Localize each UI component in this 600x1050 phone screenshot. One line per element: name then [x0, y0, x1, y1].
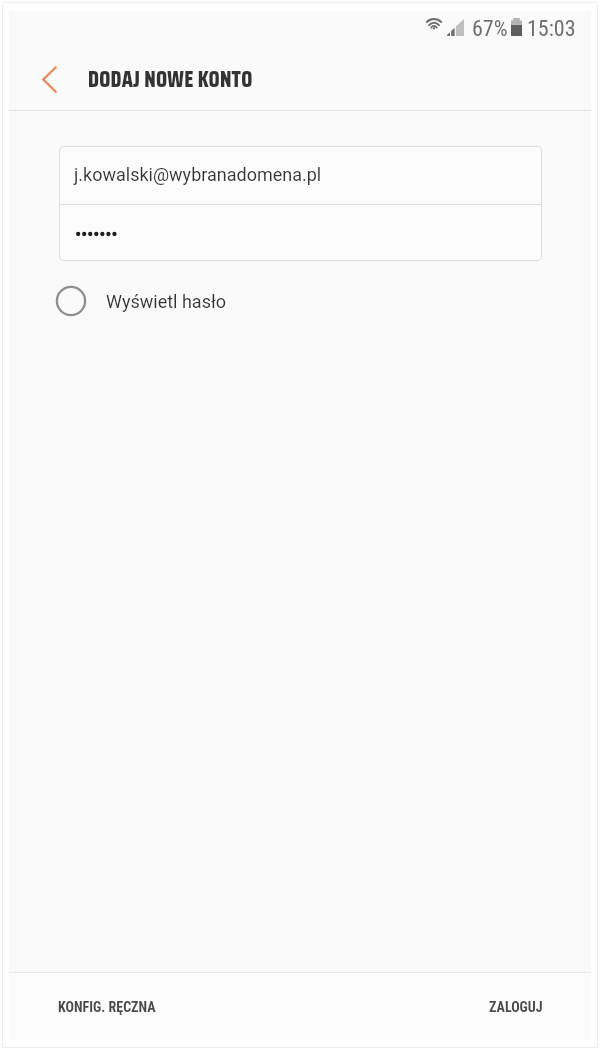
staticText: DODAJ NOWE KONTO	[88, 62, 253, 97]
staticText: j.kowalski@wybranadomena.pl	[74, 164, 322, 185]
button[interactable]: ZALOGUJ	[469, 983, 591, 1031]
button[interactable]: KONFIG. RĘCZNA	[9, 983, 176, 1031]
button[interactable]: Back	[31, 61, 67, 97]
button[interactable]	[59, 205, 542, 261]
staticText: 67%	[472, 16, 508, 42]
staticText: KONFIG. RĘCZNA	[58, 999, 156, 1015]
staticText: 15:03	[527, 16, 576, 42]
button[interactable]: j.kowalski@wybranadomena.pl	[59, 146, 542, 204]
staticText: ZALOGUJ	[489, 999, 543, 1015]
staticText: Wyświetl hasło	[106, 291, 227, 312]
button[interactable]: Wyświetl hasło	[51, 281, 227, 321]
